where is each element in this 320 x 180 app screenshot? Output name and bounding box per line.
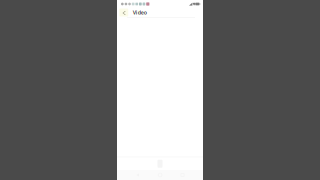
- button[interactable]: Back: [119, 8, 128, 17]
- staticText: Video: [133, 9, 147, 16]
